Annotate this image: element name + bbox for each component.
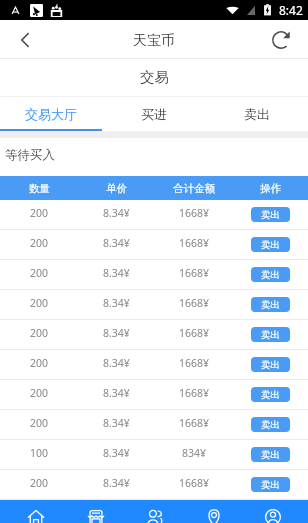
button[interactable]: 卖出 bbox=[251, 207, 290, 222]
staticText: 200 bbox=[30, 386, 49, 400]
staticText: 200 bbox=[30, 326, 49, 340]
staticText: 8.34¥ bbox=[103, 356, 130, 370]
staticText: 834¥ bbox=[182, 446, 207, 460]
staticText: 卖出 bbox=[261, 389, 280, 401]
staticText: 交易大厅 bbox=[25, 106, 77, 122]
staticText: 200 bbox=[30, 356, 49, 370]
staticText: 数量 bbox=[29, 182, 50, 195]
button[interactable]: 交易大厅 bbox=[0, 97, 102, 131]
button[interactable]: 卖出 bbox=[251, 477, 290, 492]
staticText: 卖出 bbox=[261, 359, 280, 371]
staticText: 8.34¥ bbox=[103, 206, 130, 220]
button[interactable]: 卖出 bbox=[251, 447, 290, 462]
staticText: 卖出 bbox=[261, 479, 280, 491]
staticText: 8.34¥ bbox=[103, 476, 130, 490]
staticText: 1668¥ bbox=[179, 476, 210, 490]
staticText: 卖出 bbox=[261, 419, 280, 431]
staticText: 8.34¥ bbox=[103, 416, 130, 430]
staticText: 交易 bbox=[140, 68, 169, 86]
staticText: 卖出 bbox=[261, 329, 280, 341]
staticText: 卖出 bbox=[261, 299, 280, 311]
staticText: 8.34¥ bbox=[103, 236, 130, 250]
staticText: 卖出 bbox=[261, 449, 280, 461]
staticText: 天宝币 bbox=[133, 32, 175, 50]
staticText: 合计金额 bbox=[173, 182, 215, 195]
staticText: 卖出 bbox=[244, 106, 270, 122]
staticText: 卖出 bbox=[261, 269, 280, 281]
staticText: 200 bbox=[30, 416, 49, 430]
button[interactable]: 卖出 bbox=[251, 267, 290, 282]
button[interactable]: 卖出 bbox=[251, 237, 290, 252]
staticText: 卖出 bbox=[261, 239, 280, 251]
staticText: 1668¥ bbox=[179, 386, 210, 400]
button[interactable]: 卖出 bbox=[251, 387, 290, 402]
button[interactable]: Friends bbox=[125, 500, 184, 523]
staticText: 单价 bbox=[106, 182, 127, 195]
staticText: 200 bbox=[30, 206, 49, 220]
staticText: 8.34¥ bbox=[103, 266, 130, 280]
staticText: 200 bbox=[30, 266, 49, 280]
button[interactable]: Location bbox=[184, 500, 243, 523]
button[interactable]: Home bbox=[6, 500, 66, 523]
staticText: 1668¥ bbox=[179, 206, 210, 220]
staticText: 200 bbox=[30, 296, 49, 310]
button[interactable]: 卖出 bbox=[251, 327, 290, 342]
button[interactable]: 卖出 bbox=[251, 417, 290, 432]
staticText: 1668¥ bbox=[179, 266, 210, 280]
staticText: 卖出 bbox=[261, 209, 280, 221]
button[interactable]: 卖出 bbox=[251, 297, 290, 312]
button[interactable]: 卖出 bbox=[251, 357, 290, 372]
button[interactable]: Refresh bbox=[254, 20, 308, 59]
staticText: 1668¥ bbox=[179, 416, 210, 430]
button[interactable]: Back bbox=[0, 20, 50, 59]
button[interactable]: Store bbox=[66, 500, 125, 523]
staticText: 1668¥ bbox=[179, 356, 210, 370]
button[interactable]: Profile bbox=[243, 500, 302, 523]
staticText: 1668¥ bbox=[179, 296, 210, 310]
staticText: 1668¥ bbox=[179, 326, 210, 340]
staticText: 8.34¥ bbox=[103, 386, 130, 400]
staticText: 200 bbox=[30, 476, 49, 490]
staticText: 操作 bbox=[260, 182, 281, 195]
staticText: 200 bbox=[30, 236, 49, 250]
staticText: 等待买入 bbox=[5, 147, 55, 163]
staticText: 8.34¥ bbox=[103, 446, 130, 460]
button[interactable]: 卖出 bbox=[205, 97, 308, 131]
button[interactable]: 买进 bbox=[102, 97, 205, 131]
staticText: 100 bbox=[30, 446, 49, 460]
staticText: 8.34¥ bbox=[103, 296, 130, 310]
staticText: 1668¥ bbox=[179, 236, 210, 250]
staticText: 买进 bbox=[141, 106, 167, 122]
staticText: 8:42 bbox=[279, 2, 303, 18]
staticText: 8.34¥ bbox=[103, 326, 130, 340]
